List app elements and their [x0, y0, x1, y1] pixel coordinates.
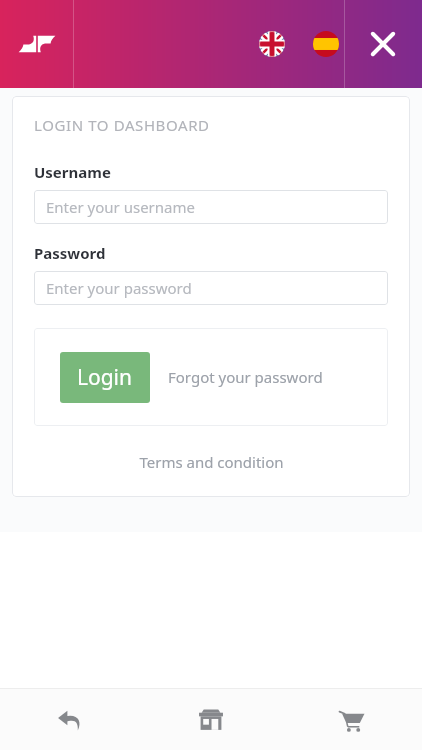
button[interactable]: Enter your password: [34, 271, 388, 305]
button[interactable]: English: [254, 26, 290, 62]
button[interactable]: Spanish: [308, 26, 344, 62]
staticText: Forgot your password: [168, 367, 323, 387]
button[interactable]: Forgot your password: [166, 361, 325, 393]
staticText: Login: [77, 363, 133, 392]
staticText: Enter your username: [46, 197, 195, 217]
staticText: Terms and condition: [139, 452, 284, 472]
button[interactable]: Home: [0, 0, 73, 88]
staticText: Password: [34, 243, 106, 263]
button[interactable]: Terms and condition: [131, 446, 292, 478]
button[interactable]: Back: [0, 689, 140, 750]
staticText: Enter your password: [46, 278, 192, 298]
button[interactable]: Login: [60, 352, 150, 403]
button[interactable]: Store: [140, 689, 281, 750]
button[interactable]: Enter your username: [34, 190, 388, 224]
button[interactable]: Close: [344, 0, 422, 88]
button[interactable]: Cart: [281, 689, 422, 750]
staticText: LOGIN TO DASHBOARD: [34, 115, 210, 135]
staticText: Username: [34, 162, 111, 182]
